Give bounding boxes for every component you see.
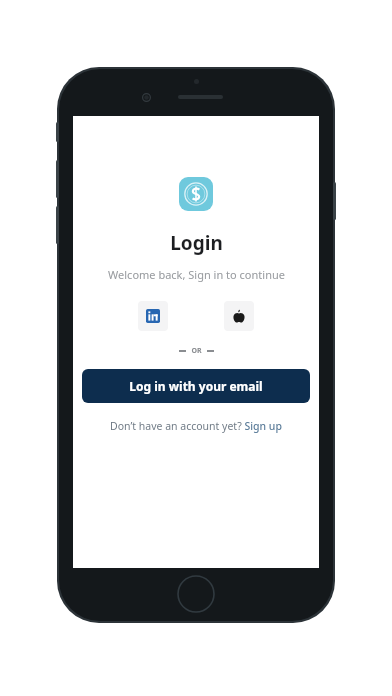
button[interactable]: Sign in with LinkedIn [138, 301, 168, 331]
staticText: Login [170, 230, 223, 256]
button[interactable]: Don’t have an account yet? Sign up [104, 416, 288, 436]
staticText: OR [191, 346, 202, 356]
staticText: Don’t have an account yet? Sign up [110, 419, 282, 433]
button[interactable]: Log in with your email [82, 369, 310, 403]
staticText: Welcome back, Sign in to continue [108, 267, 285, 282]
staticText: Log in with your email [129, 378, 263, 394]
button[interactable]: Sign in with Apple [224, 301, 254, 331]
